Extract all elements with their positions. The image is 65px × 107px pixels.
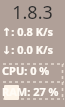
staticText: RAM: 27 % [2, 84, 59, 99]
staticText: 1.8.3 [0, 0, 65, 25]
staticText: ↑: 0.8 K/s [2, 24, 54, 39]
button[interactable]: 1.8.3 [0, 0, 65, 107]
staticText: ↓: 0.0 K/s [2, 42, 54, 57]
staticText: CPU: 0 % [2, 63, 50, 78]
